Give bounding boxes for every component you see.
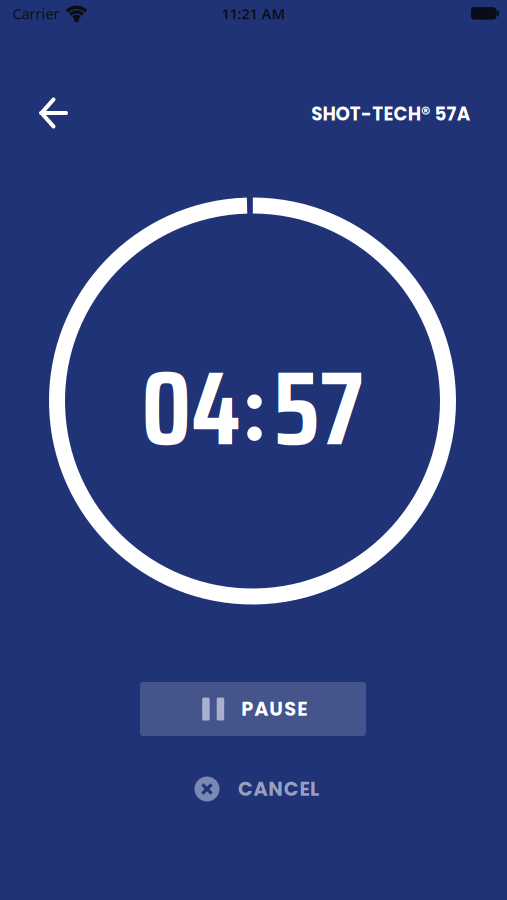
button[interactable]: PAUSE: [140, 682, 366, 736]
staticText: Carrier: [12, 4, 59, 23]
staticText: PAUSE: [241, 695, 307, 723]
staticText: 11:21 AM: [221, 4, 285, 23]
button[interactable]: Back: [31, 91, 75, 135]
staticText: 57: [273, 326, 364, 490]
staticText: SHOT-TECH® 57A: [311, 101, 471, 127]
button[interactable]: CANCEL: [194, 772, 320, 806]
staticText: 04: [141, 326, 240, 490]
staticText: CANCEL: [238, 775, 319, 803]
